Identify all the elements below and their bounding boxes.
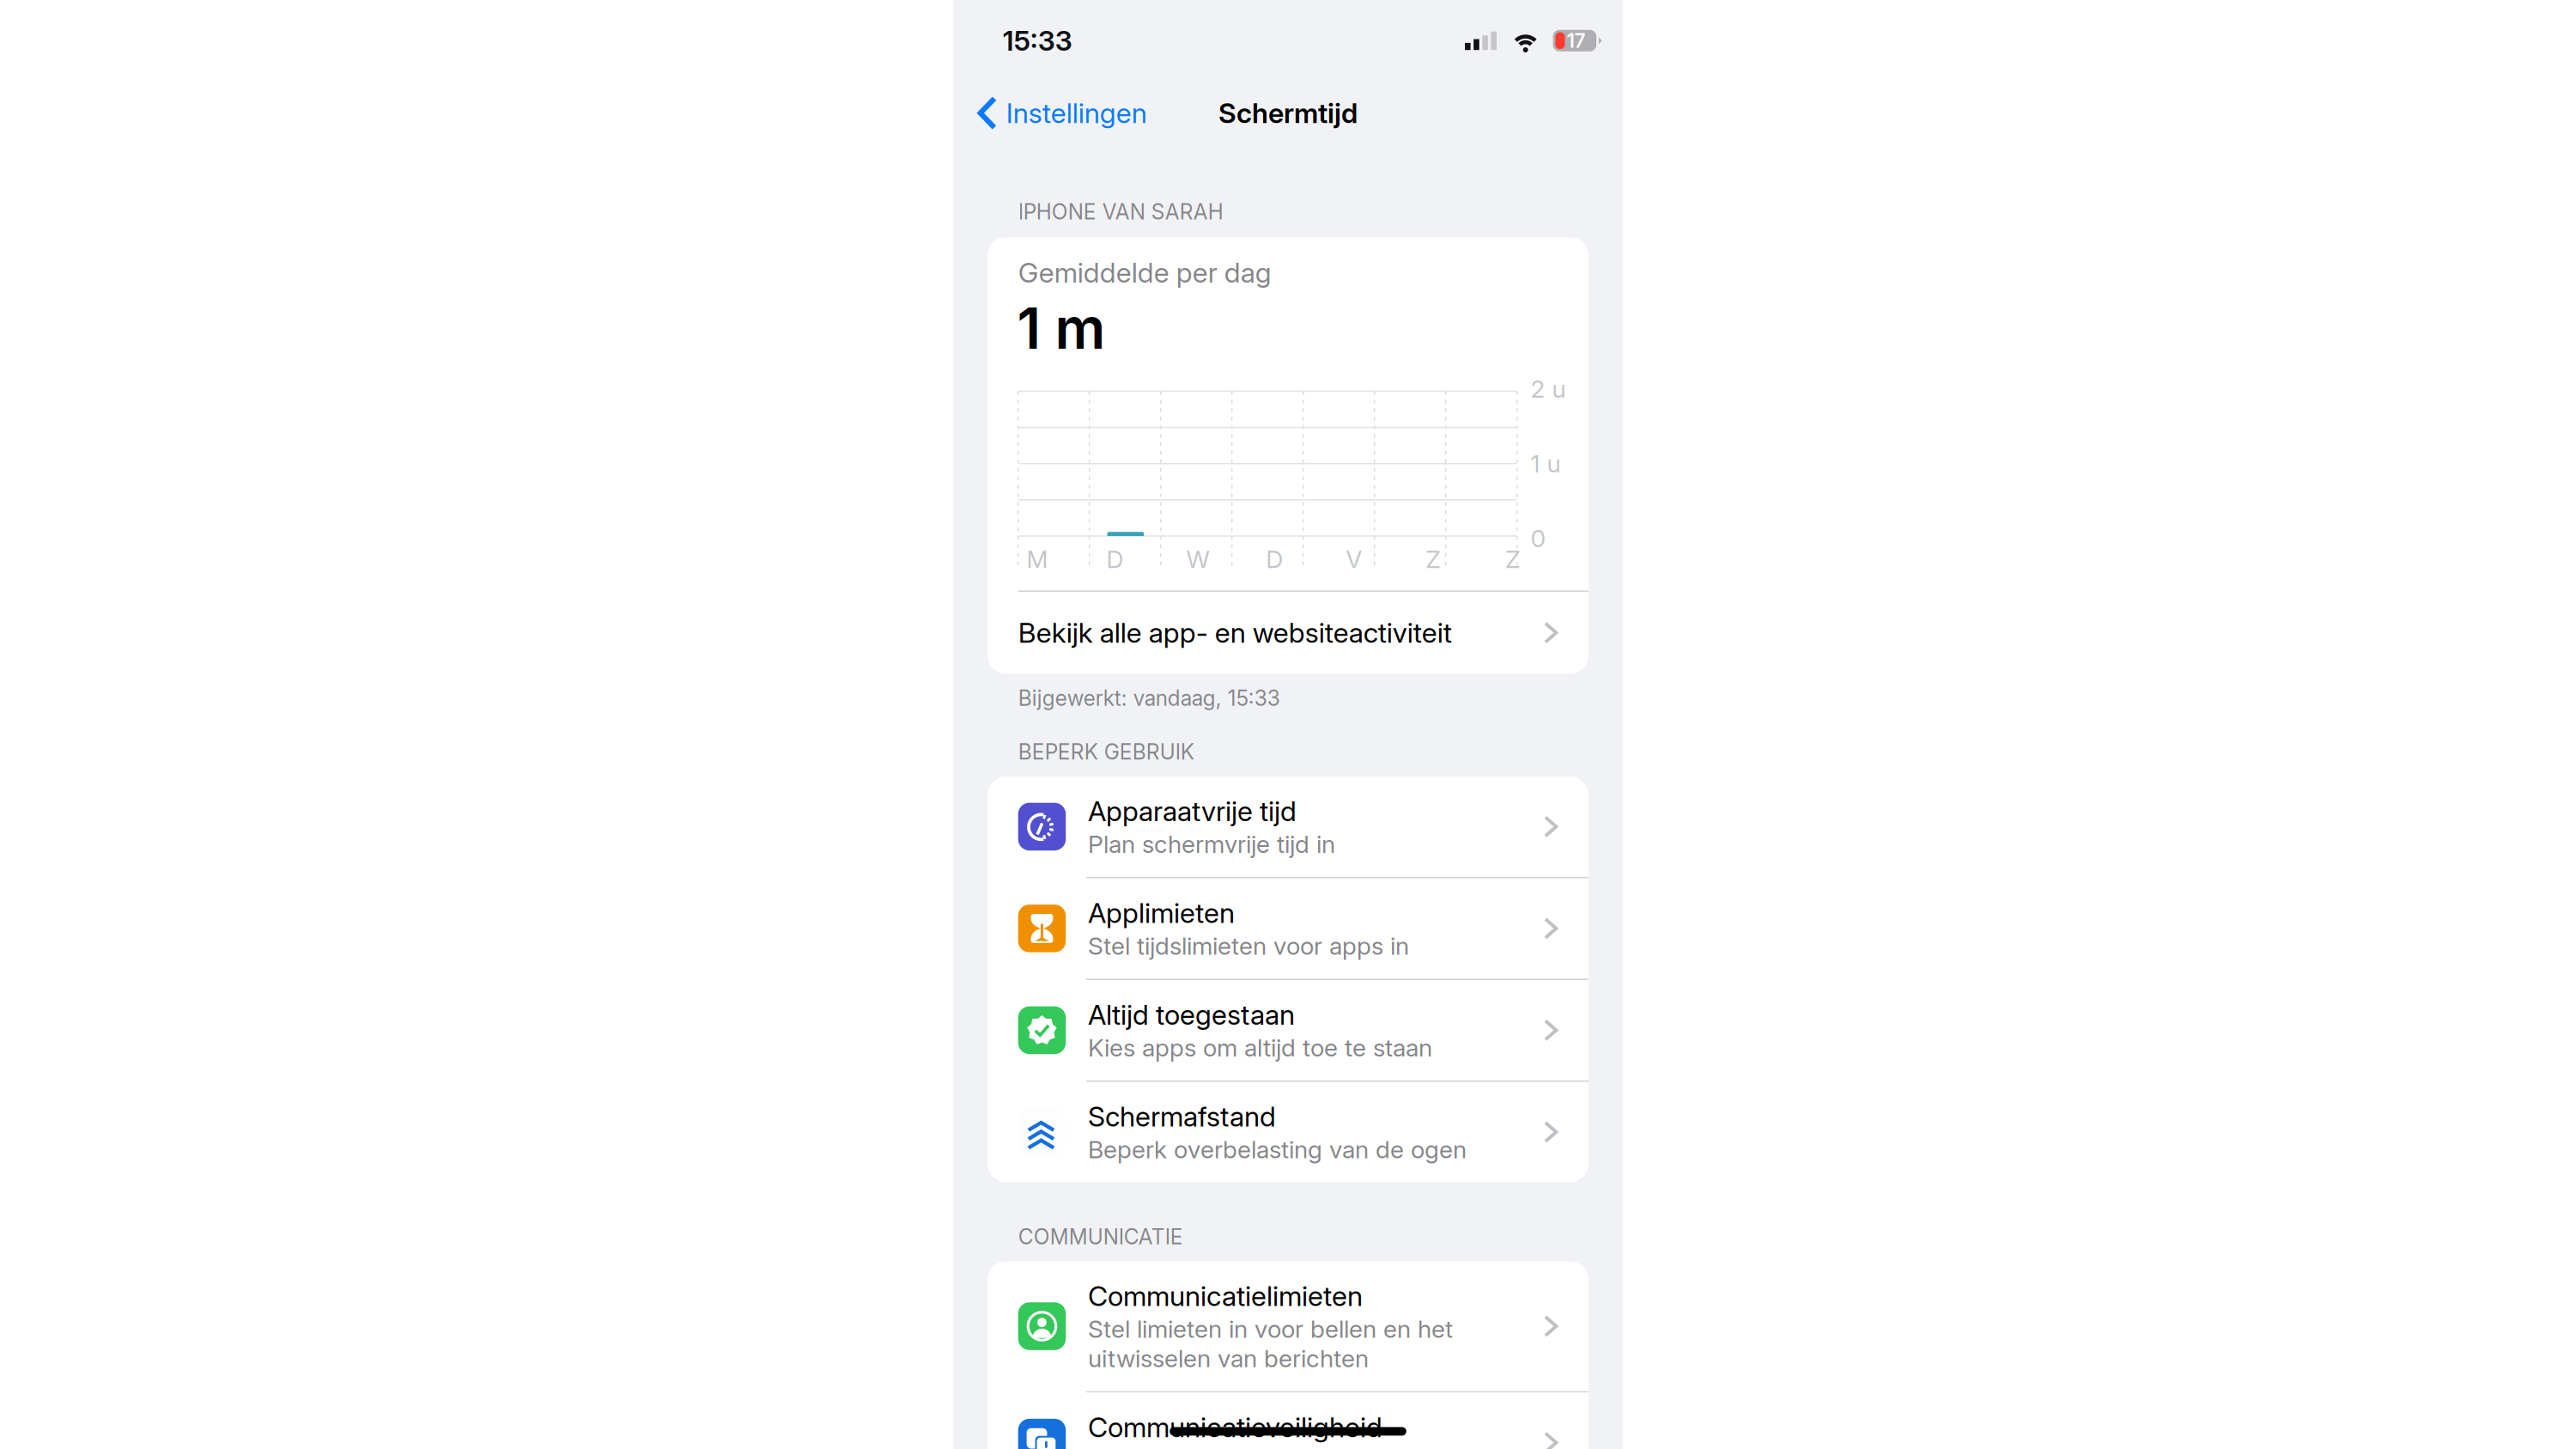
staticText: Altijd toegestaan xyxy=(1088,998,1295,1031)
staticText: Stel limieten in voor bellen en het uitw… xyxy=(1088,1314,1453,1373)
button[interactable]: Altijd toegestaan xyxy=(987,980,1589,1080)
staticText: Communicatieveiligheid xyxy=(1088,1411,1382,1444)
staticText: Z xyxy=(1426,544,1441,574)
button[interactable]: Communicatielimieten xyxy=(987,1261,1589,1391)
staticText: Z xyxy=(1505,544,1521,574)
staticText: Bekijk alle app- en websiteactiviteit xyxy=(1018,616,1452,649)
staticText: COMMUNICATIE xyxy=(1018,1224,1183,1249)
staticText: 0 xyxy=(1531,524,1546,553)
staticText: Gemiddelde per dag xyxy=(1018,256,1271,289)
staticText: Bijgewerkt: vandaag, 15:33 xyxy=(1018,686,1280,711)
staticText: Kies apps om altijd toe te staan xyxy=(1088,1033,1432,1062)
staticText: Beperk overbelasting van de ogen xyxy=(1088,1135,1467,1164)
staticText: 1 m xyxy=(1017,294,1106,362)
staticText: 1 u xyxy=(1531,449,1561,478)
button[interactable]: Applimieten xyxy=(987,878,1589,979)
button[interactable]: Schermafstand xyxy=(987,1082,1589,1182)
button[interactable]: Apparaatvrije tijd xyxy=(987,776,1589,877)
staticText: D xyxy=(1266,544,1283,574)
button[interactable]: Bekijk alle app- en websiteactiviteit xyxy=(987,592,1589,674)
staticText: 17 xyxy=(1567,29,1585,52)
staticText: W xyxy=(1186,544,1209,574)
staticText: Instellingen xyxy=(1006,96,1147,130)
button[interactable]: Communicatieveiligheid xyxy=(987,1392,1589,1449)
staticText: V xyxy=(1346,544,1362,574)
staticText: D xyxy=(1106,544,1124,574)
staticText: Schermafstand xyxy=(1088,1100,1276,1133)
staticText: IPHONE VAN SARAH xyxy=(1018,199,1223,224)
staticText: Apparaatvrije tijd xyxy=(1088,795,1297,828)
staticText: BEPERK GEBRUIK xyxy=(1018,739,1194,765)
staticText: Schermtijd xyxy=(1218,96,1358,130)
staticText: Applimieten xyxy=(1088,896,1235,930)
button[interactable]: Instellingen xyxy=(964,86,1161,140)
staticText: Communicatielimieten xyxy=(1088,1279,1363,1313)
staticText: M xyxy=(1027,544,1048,574)
staticText: Stel tijdslimieten voor apps in xyxy=(1088,931,1409,961)
staticText: Plan schermvrije tijd in xyxy=(1088,829,1335,859)
staticText: 15:33 xyxy=(1003,24,1072,57)
staticText: 2 u xyxy=(1531,374,1566,404)
